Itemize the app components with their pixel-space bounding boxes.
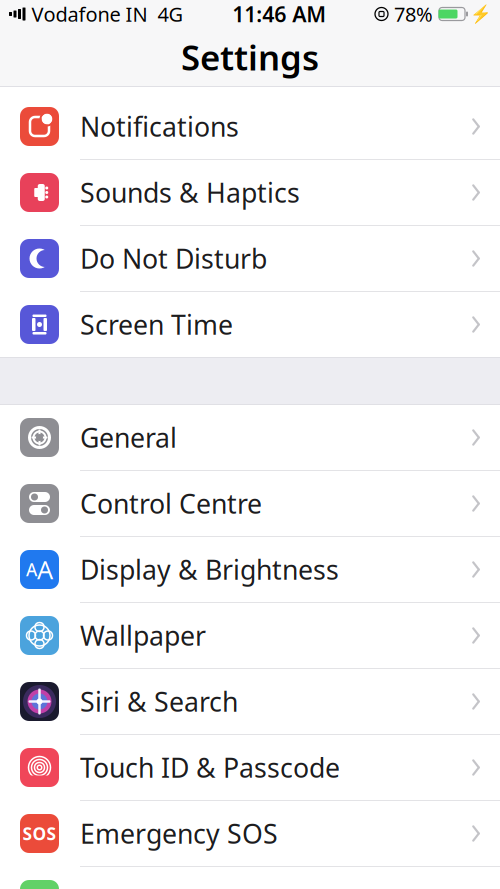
button[interactable]: General [0, 405, 500, 471]
button[interactable]: Do Not Disturb [0, 226, 500, 292]
staticText: A [26, 558, 37, 581]
button[interactable]: A [0, 537, 500, 603]
staticText: General [80, 420, 177, 455]
staticText: A [37, 553, 53, 586]
staticText: 78% [394, 1, 433, 27]
staticText: ⚡ [470, 4, 492, 24]
staticText: Wallpaper [80, 618, 206, 653]
staticText: 4G [157, 1, 183, 27]
button[interactable]: Control Centre [0, 471, 500, 537]
staticText: Notifications [80, 109, 239, 144]
button[interactable]: Touch ID & Passcode [0, 735, 500, 801]
staticText: Siri & Search [80, 684, 238, 719]
button[interactable]: Siri & Search [0, 669, 500, 735]
button[interactable]: Screen Time [0, 292, 500, 357]
button[interactable]: Notifications [0, 94, 500, 160]
staticText: Touch ID & Passcode [80, 750, 340, 785]
staticText: Screen Time [80, 307, 233, 342]
staticText: SOS [22, 822, 56, 845]
button[interactable]: Wallpaper [0, 603, 500, 669]
staticText: Settings [181, 34, 319, 80]
button[interactable]: Battery [0, 867, 500, 889]
button[interactable]: SOS [0, 801, 500, 867]
staticText: Do Not Disturb [80, 241, 267, 276]
button[interactable]: Sounds & Haptics [0, 160, 500, 226]
staticText: Emergency SOS [80, 816, 278, 851]
staticText: Sounds & Haptics [80, 175, 300, 210]
staticText: Display & Brightness [80, 552, 339, 587]
staticText: Control Centre [80, 486, 262, 521]
staticText: Vodafone IN [31, 1, 147, 27]
staticText: 11:46 AM [232, 0, 326, 28]
